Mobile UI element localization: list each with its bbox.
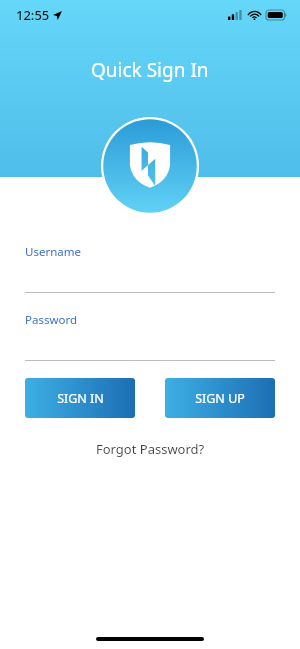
button[interactable]: Username	[25, 244, 275, 293]
button[interactable]: Password	[25, 312, 275, 361]
other: Wi-Fi	[248, 10, 261, 20]
staticText: SIGN UP	[195, 390, 245, 407]
staticText: Forgot Password?	[96, 440, 205, 458]
staticText: Password	[25, 312, 78, 328]
staticText: 12:55	[16, 6, 50, 24]
button[interactable]: Forgot Password?	[90, 437, 211, 461]
other: Cellular signal	[228, 10, 243, 20]
staticText: Username	[25, 244, 81, 260]
button[interactable]: SIGN IN	[25, 378, 135, 418]
staticText: SIGN IN	[57, 390, 104, 407]
button[interactable]: SIGN UP	[165, 378, 275, 418]
staticText: Quick Sign In	[91, 57, 209, 83]
other: Battery	[266, 10, 287, 20]
other: Location active	[53, 11, 62, 20]
